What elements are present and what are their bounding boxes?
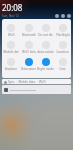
button[interactable]: Flashlight — [54, 24, 71, 41]
button[interactable]: Mobile dat — [2, 41, 20, 58]
button[interactable]: Edit tiles — [61, 14, 65, 18]
button[interactable]: Sync · Mobile data · Wi-Fi — [2, 79, 71, 84]
staticText: Night mode — [37, 67, 54, 71]
button[interactable]: Do not dis — [37, 24, 54, 41]
staticText: Sun, Nov 12 — [2, 14, 19, 18]
staticText: Sync · Mobile data · Wi-Fi — [8, 80, 46, 84]
button[interactable]: Wi-Fi — [2, 24, 20, 41]
staticText: Wi-Fi — [8, 33, 15, 37]
staticText: Airplane — [5, 67, 17, 71]
button[interactable]: Wi-Fi hots — [20, 41, 37, 58]
button[interactable]: Cast — [54, 58, 71, 75]
button[interactable]: Data saver — [20, 58, 37, 75]
button[interactable] — [2, 85, 71, 94]
button[interactable]: Location — [54, 41, 71, 58]
staticText: 20:08 — [2, 2, 23, 13]
button[interactable]: Airplane — [2, 58, 20, 75]
button[interactable]: Settings — [67, 14, 71, 18]
button[interactable]: Night mode — [37, 58, 54, 75]
button[interactable]: Bluetooth — [20, 24, 37, 41]
staticText: Auto-rotate — [37, 50, 54, 54]
staticText: Cast — [59, 67, 66, 71]
staticText: Do not dis — [38, 33, 53, 37]
staticText: Location — [56, 50, 69, 54]
staticText: Bluetooth — [22, 33, 36, 37]
staticText: Wi-Fi hots — [22, 50, 36, 54]
button[interactable]: User — [55, 14, 59, 18]
button[interactable]: Auto-rotate — [37, 41, 54, 58]
staticText: Data saver — [21, 67, 36, 71]
staticText: Mobile dat — [3, 50, 19, 54]
staticText: Flashlight — [56, 33, 70, 37]
